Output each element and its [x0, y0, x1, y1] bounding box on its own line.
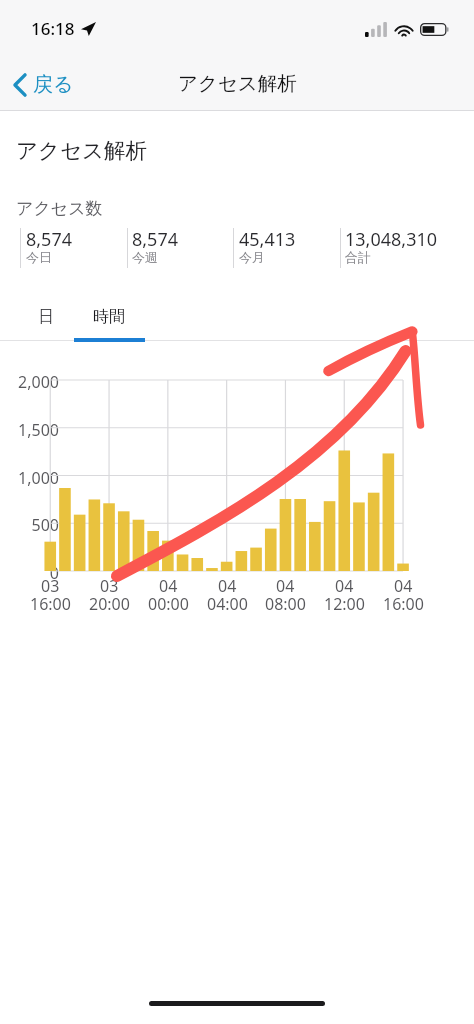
staticText: 16:18 [31, 17, 75, 40]
staticText: 04:00 [207, 593, 248, 615]
staticText: 04 [276, 575, 295, 597]
button[interactable]: 日 [26, 299, 66, 335]
staticText: 16:00 [30, 593, 71, 615]
staticText: アクセス解析 [178, 71, 297, 96]
staticText: 戻る [33, 72, 74, 97]
staticText: 日 [38, 307, 54, 327]
staticText: 16:00 [383, 593, 424, 615]
staticText: 合計 [345, 249, 371, 265]
staticText: 13,048,310 [345, 227, 438, 252]
staticText: 04 [218, 575, 237, 597]
staticText: 2,000 [0, 371, 59, 393]
staticText: 04 [394, 575, 413, 597]
staticText: 08:00 [265, 593, 306, 615]
button[interactable]: 時間 [81, 299, 137, 335]
staticText: 04 [159, 575, 178, 597]
button[interactable]: 戻る [0, 58, 88, 111]
staticText: 8,574 [132, 227, 179, 252]
staticText: 12:00 [324, 593, 365, 615]
staticText: 45,413 [239, 227, 296, 252]
staticText: 今月 [239, 249, 265, 265]
staticText: アクセス解析 [16, 137, 148, 164]
staticText: 今週 [132, 249, 158, 265]
staticText: 03 [41, 575, 60, 597]
staticText: 1,500 [0, 419, 59, 441]
staticText: 時間 [93, 307, 125, 327]
staticText: 20:00 [89, 593, 130, 615]
staticText: 500 [0, 514, 59, 536]
staticText: 今日 [26, 249, 52, 265]
staticText: 0 [0, 562, 59, 584]
staticText: 03 [100, 575, 119, 597]
staticText: 00:00 [148, 593, 189, 615]
staticText: 1,000 [0, 467, 59, 489]
staticText: 8,574 [26, 227, 73, 252]
staticText: 04 [335, 575, 354, 597]
staticText: アクセス数 [16, 198, 103, 219]
